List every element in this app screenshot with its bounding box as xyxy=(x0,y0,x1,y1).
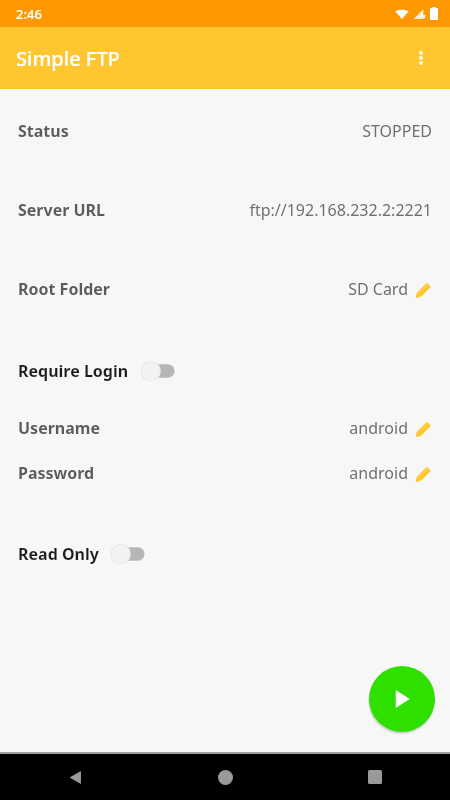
staticText: Status xyxy=(18,120,69,142)
button[interactable]: Require Login xyxy=(0,358,450,384)
button[interactable]: Password xyxy=(0,462,450,484)
button[interactable]: Home xyxy=(150,754,300,800)
button[interactable]: Server URL xyxy=(0,199,450,221)
staticText: Simple FTP xyxy=(16,45,120,72)
button[interactable]: More options xyxy=(398,35,444,81)
staticText: Read Only xyxy=(18,543,99,565)
button[interactable]: Recent apps xyxy=(300,754,450,800)
button[interactable]: Back xyxy=(0,754,150,800)
staticText: Require Login xyxy=(18,360,129,382)
button[interactable]: Username xyxy=(0,417,450,439)
staticText: Server URL xyxy=(18,199,106,221)
staticText: STOPPED xyxy=(362,120,432,142)
staticText: android xyxy=(349,417,408,439)
staticText: android xyxy=(349,462,408,484)
button[interactable]: Start server xyxy=(369,666,435,732)
button[interactable]: Toggle xyxy=(110,543,146,565)
staticText: SD Card xyxy=(348,278,408,300)
staticText: Root Folder xyxy=(18,278,110,300)
staticText: ftp://192.168.232.2:2221 xyxy=(249,199,432,221)
button[interactable]: Status xyxy=(0,120,450,142)
staticText: Password xyxy=(18,462,95,484)
button[interactable]: Read Only xyxy=(0,541,450,567)
button[interactable]: Toggle xyxy=(140,360,176,382)
staticText: Username xyxy=(18,417,100,439)
staticText: 2:46 xyxy=(16,5,42,23)
button[interactable]: Root Folder xyxy=(0,278,450,300)
